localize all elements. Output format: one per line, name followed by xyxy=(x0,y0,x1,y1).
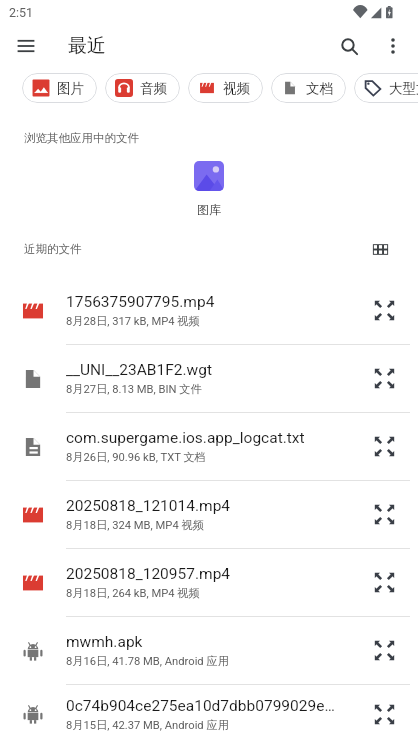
staticText: 1756375907795.mp4 xyxy=(66,293,215,311)
staticText: __UNI__23AB1F2.wgt xyxy=(66,361,212,379)
staticText: 浏览其他应用中的文件 xyxy=(24,131,139,145)
button[interactable]: 文档 xyxy=(271,73,346,103)
button[interactable]: Expand xyxy=(366,413,402,480)
staticText: 8月28日, 317 kB, MP4 视频 xyxy=(66,314,200,328)
staticText: 大型文件 xyxy=(389,80,418,97)
button[interactable]: 20250818_120957.mp4 xyxy=(0,549,418,617)
staticText: mwmh.apk xyxy=(66,633,143,651)
staticText: 20250818_120957.mp4 xyxy=(66,565,231,583)
button[interactable]: Expand xyxy=(366,277,402,344)
button[interactable]: 图片 xyxy=(22,73,97,103)
button[interactable]: Search xyxy=(331,25,367,67)
staticText: com.supergame.ios.app_logcat.txt xyxy=(66,429,305,447)
button[interactable]: 音频 xyxy=(105,73,180,103)
staticText: 视频 xyxy=(223,80,250,97)
button[interactable]: Expand xyxy=(366,345,402,412)
button[interactable]: More options xyxy=(367,25,418,67)
button[interactable]: 图库 xyxy=(194,161,224,217)
button[interactable]: 视频 xyxy=(188,73,263,103)
button[interactable]: Expand xyxy=(366,617,402,684)
staticText: 图库 xyxy=(197,202,221,217)
staticText: 8月26日, 90.96 kB, TXT 文档 xyxy=(66,450,206,464)
staticText: 8月18日, 264 kB, MP4 视频 xyxy=(66,586,200,600)
button[interactable]: Expand xyxy=(366,481,402,548)
staticText: 8月16日, 41.78 MB, Android 应用 xyxy=(66,654,229,668)
button[interactable]: Menu xyxy=(0,25,52,67)
staticText: 音频 xyxy=(140,80,167,97)
staticText: 近期的文件 xyxy=(24,242,82,256)
button[interactable]: 大型文件 xyxy=(354,73,418,103)
staticText: 0c74b904ce275ea10d7dbb0799029e4f1b2c3d.a… xyxy=(66,697,336,715)
button[interactable]: 1756375907795.mp4 xyxy=(0,277,418,345)
button[interactable]: 0c74b904ce275ea10d7dbb0799029e4f1b2c3d.a… xyxy=(0,685,418,743)
staticText: 20250818_121014.mp4 xyxy=(66,497,231,515)
staticText: 8月18日, 324 MB, MP4 视频 xyxy=(66,518,204,532)
staticText: 最近 xyxy=(68,34,106,58)
button[interactable]: mwmh.apk xyxy=(0,617,418,685)
staticText: 8月27日, 8.13 MB, BIN 文件 xyxy=(66,382,202,396)
button[interactable]: __UNI__23AB1F2.wgt xyxy=(0,345,418,413)
button[interactable]: Expand xyxy=(366,549,402,616)
staticText: 图片 xyxy=(57,80,84,97)
staticText: 2:51 xyxy=(9,5,34,20)
button[interactable]: Grid view xyxy=(369,238,391,260)
staticText: 8月15日, 42.37 MB, Android 应用 xyxy=(66,718,229,732)
button[interactable]: com.supergame.ios.app_logcat.txt xyxy=(0,413,418,481)
button[interactable]: 20250818_121014.mp4 xyxy=(0,481,418,549)
button[interactable]: Expand xyxy=(366,685,402,743)
staticText: 文档 xyxy=(306,80,333,97)
